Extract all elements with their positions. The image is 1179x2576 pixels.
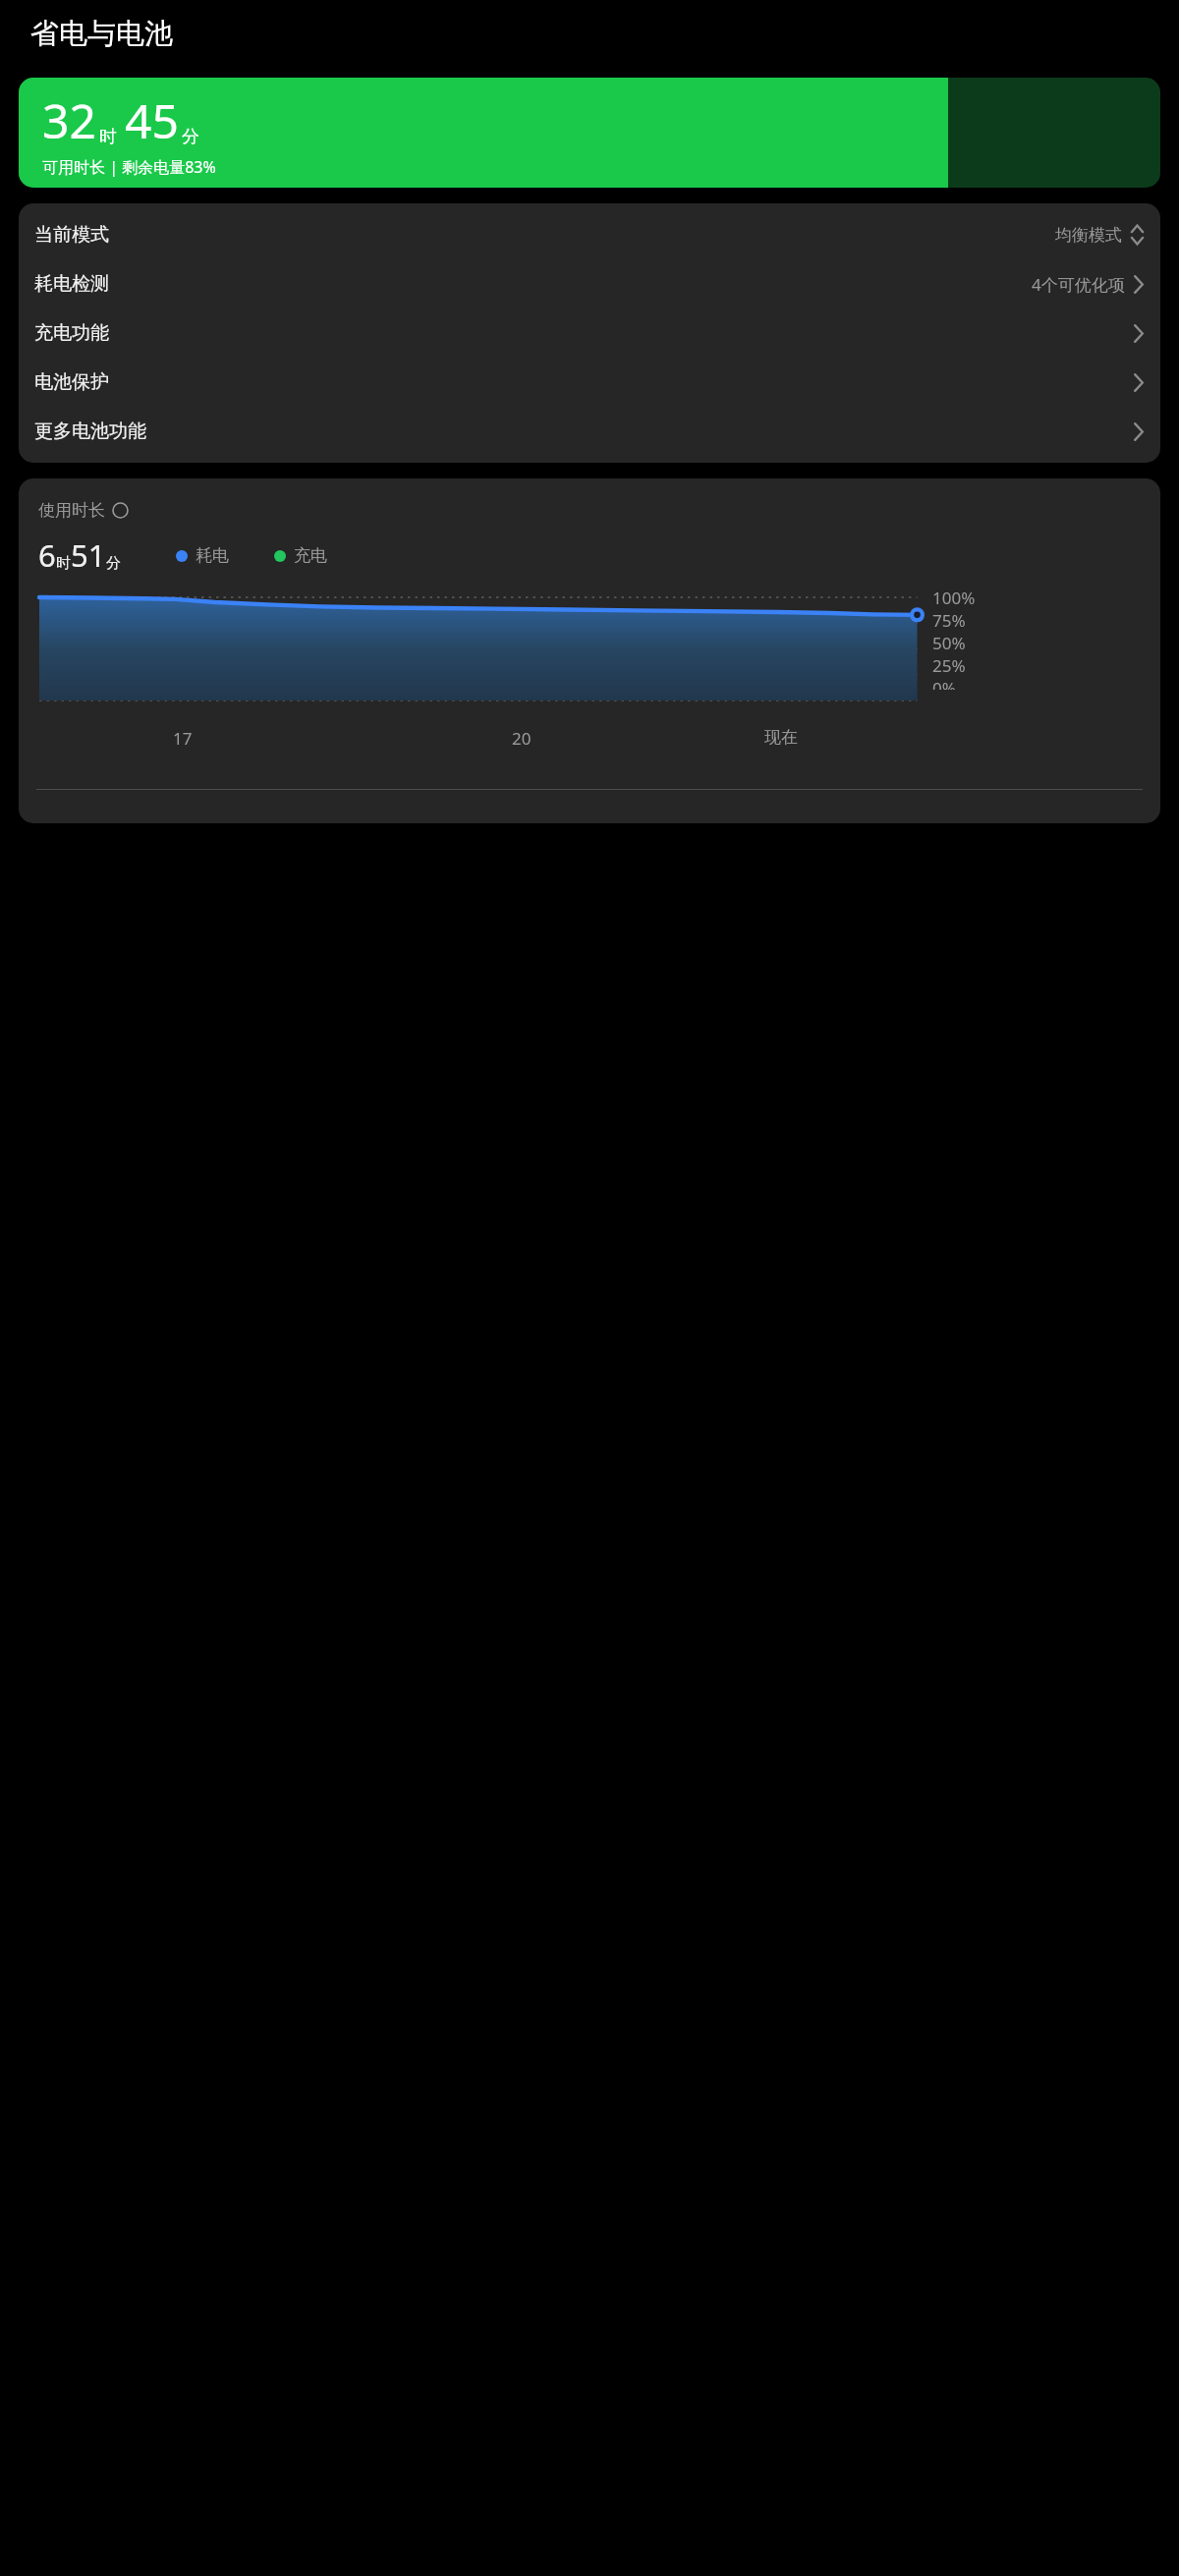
other: Open 耗电检测 xyxy=(1133,274,1145,295)
other: Open 充电功能 xyxy=(1133,323,1145,344)
staticText: 17 xyxy=(173,727,193,750)
staticText: 省电与电池 xyxy=(30,16,173,52)
other: Change power mode xyxy=(1130,224,1145,246)
staticText: 更多电池功能 xyxy=(34,420,146,443)
button[interactable]: 更多电池功能 xyxy=(19,407,1160,456)
button[interactable]: 电池保护 xyxy=(19,358,1160,407)
staticText: 分 xyxy=(106,554,121,573)
button[interactable]: 充电功能 xyxy=(19,308,1160,358)
staticText: 耗电检测 xyxy=(34,272,109,296)
staticText: 0% xyxy=(932,677,956,690)
staticText: 电池保护 xyxy=(34,370,109,394)
staticText: 20 xyxy=(512,727,532,750)
button[interactable]: 耗电检测 xyxy=(19,259,1160,308)
staticText: 75% xyxy=(932,609,966,632)
staticText: 可用时长 | 剩余电量83% xyxy=(42,156,216,178)
staticText: 25% xyxy=(932,654,966,677)
button[interactable]: 当前模式 xyxy=(19,210,1160,259)
staticText: 分 xyxy=(182,126,199,148)
staticText: 45 xyxy=(125,88,179,152)
staticText: 均衡模式 xyxy=(1055,225,1122,246)
staticText: 4个可优化项 xyxy=(1032,273,1125,296)
staticText: 充电功能 xyxy=(34,321,109,345)
button[interactable]: 32 xyxy=(19,78,1160,188)
staticText: 6 xyxy=(38,534,56,576)
staticText: 现在 xyxy=(764,727,798,748)
other: Open 更多电池功能 xyxy=(1133,421,1145,442)
staticText: 50% xyxy=(932,632,966,654)
other: Open 电池保护 xyxy=(1133,372,1145,393)
staticText: 当前模式 xyxy=(34,223,109,247)
staticText: 时 xyxy=(99,126,117,148)
staticText: 100% xyxy=(932,587,976,609)
staticText: 51 xyxy=(71,534,106,576)
staticText: 充电 xyxy=(294,545,327,566)
staticText: 32 xyxy=(42,88,96,152)
staticText: 耗电 xyxy=(196,545,229,566)
staticText: 时 xyxy=(56,554,71,573)
staticText: 使用时长 xyxy=(38,500,105,521)
other: Help xyxy=(112,502,129,519)
